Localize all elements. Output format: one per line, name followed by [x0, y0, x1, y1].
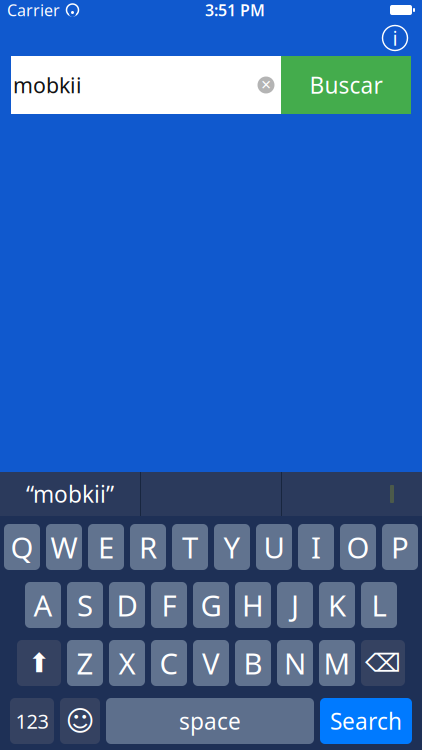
button[interactable]: J — [277, 582, 313, 628]
staticText: ⌫ — [365, 649, 401, 677]
staticText: ✕ — [260, 77, 271, 92]
staticText: Carrier — [7, 0, 60, 21]
button[interactable]: Clear text — [251, 65, 281, 105]
staticText: C — [159, 643, 178, 682]
button[interactable]: N — [277, 640, 313, 686]
staticText: H — [242, 585, 264, 624]
button[interactable]: Y — [214, 524, 250, 570]
staticText: S — [77, 585, 93, 624]
staticText: X — [118, 643, 135, 682]
staticText: G — [200, 585, 221, 624]
button[interactable]: Buscar — [281, 56, 411, 114]
staticText: 3:51 PM — [205, 0, 265, 21]
staticText: M — [323, 643, 350, 682]
staticText: i — [392, 25, 397, 51]
staticText: K — [328, 585, 346, 624]
button[interactable]: M — [319, 640, 355, 686]
staticText: ☺ — [65, 705, 94, 737]
button[interactable]: Information — [374, 20, 416, 56]
staticText: space — [179, 706, 241, 736]
button[interactable]: Emoji — [60, 698, 100, 744]
button[interactable]: K — [319, 582, 355, 628]
button[interactable]: F — [151, 582, 187, 628]
staticText: P — [391, 527, 409, 566]
button[interactable]: H — [235, 582, 271, 628]
staticText: L — [371, 585, 386, 624]
staticText: V — [202, 643, 220, 682]
button[interactable]: W — [46, 524, 82, 570]
button[interactable]: Delete — [361, 640, 405, 686]
staticText: N — [284, 643, 306, 682]
staticText: Y — [223, 527, 240, 566]
button[interactable]: T — [172, 524, 208, 570]
button[interactable]: C — [151, 640, 187, 686]
button[interactable]: A — [25, 582, 61, 628]
staticText: Q — [10, 527, 33, 566]
button[interactable]: D — [109, 582, 145, 628]
button[interactable]: G — [193, 582, 229, 628]
button[interactable]: Suggestion — [282, 472, 422, 516]
button[interactable]: Q — [4, 524, 40, 570]
staticText: T — [182, 527, 198, 566]
staticText: O — [346, 527, 369, 566]
staticText: J — [291, 585, 299, 624]
staticText: I — [311, 527, 321, 566]
staticText: F — [161, 585, 176, 624]
button[interactable]: P — [382, 524, 418, 570]
staticText: “mobkii” — [26, 479, 114, 509]
staticText: ⬆ — [28, 648, 50, 678]
button[interactable]: L — [361, 582, 397, 628]
button[interactable]: X — [109, 640, 145, 686]
button[interactable]: O — [340, 524, 376, 570]
staticText: mobkii — [13, 71, 82, 99]
staticText: A — [33, 585, 52, 624]
button[interactable]: “mobkii” — [0, 472, 140, 516]
button[interactable]: S — [67, 582, 103, 628]
button[interactable]: E — [88, 524, 124, 570]
staticText: Search — [330, 706, 402, 736]
staticText: Buscar — [309, 70, 382, 100]
button[interactable]: I — [298, 524, 334, 570]
staticText: D — [116, 585, 137, 624]
staticText: E — [98, 527, 114, 566]
staticText: B — [243, 643, 262, 682]
button[interactable]: space — [106, 698, 314, 744]
staticText: Z — [76, 643, 93, 682]
button[interactable]: V — [193, 640, 229, 686]
button[interactable]: 123 — [10, 698, 54, 744]
button[interactable]: Shift — [17, 640, 61, 686]
staticText: R — [139, 527, 157, 566]
button[interactable]: B — [235, 640, 271, 686]
staticText: 123 — [15, 708, 48, 734]
staticText: U — [263, 527, 284, 566]
button[interactable]: U — [256, 524, 292, 570]
button[interactable]: R — [130, 524, 166, 570]
button[interactable]: Z — [67, 640, 103, 686]
button[interactable]: Search — [320, 698, 412, 744]
staticText: W — [50, 527, 77, 566]
